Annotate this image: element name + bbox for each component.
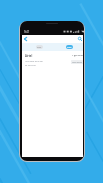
button[interactable]: Search (76, 35, 84, 43)
button[interactable]: Back (22, 35, 30, 43)
staticText: + $0.15 M (72, 54, 83, 57)
staticText: View details (72, 61, 82, 63)
staticText: Sent (37, 46, 42, 49)
staticText: 9:41 (24, 30, 30, 34)
button[interactable]: View details (71, 60, 83, 64)
staticText: Airtel (25, 54, 33, 58)
staticText: 20 Apr 2018 (25, 64, 36, 67)
staticText: Paid (67, 46, 72, 49)
button[interactable]: Paid (66, 45, 73, 49)
button[interactable]: Sent (36, 45, 43, 49)
staticText: 1234 5678 9012 345 (25, 60, 43, 63)
button[interactable]: Airtel (22, 51, 83, 68)
